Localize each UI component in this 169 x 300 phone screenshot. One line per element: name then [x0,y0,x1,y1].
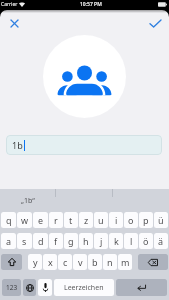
staticText: f [54,235,58,247]
staticText: e [38,214,44,226]
staticText: ö [143,235,149,247]
button[interactable]: t [64,212,78,228]
staticText: o [128,214,134,226]
button[interactable]: w [17,212,32,228]
button[interactable]: 123 [2,279,21,296]
button[interactable]: q [1,212,16,228]
staticText: k [114,235,119,247]
button[interactable]: l [124,233,138,249]
staticText: n [107,256,113,268]
staticText: c [63,256,68,268]
staticText: Leerzeichen [64,283,104,293]
staticText: b [92,256,98,268]
staticText: l [130,235,133,247]
staticText: „1b“ [21,196,35,206]
staticText: x [48,256,53,268]
staticText: m [121,256,130,268]
button[interactable]: u [94,212,108,228]
button[interactable]: x [43,254,57,270]
button[interactable]: y [28,254,42,270]
button[interactable]: f [49,233,63,249]
button[interactable]: p [139,212,153,228]
button[interactable]: r [49,212,63,228]
button[interactable]: ä [154,233,168,249]
staticText: g [68,235,74,247]
staticText: Carrier [1,1,18,8]
staticText: d [38,235,44,247]
staticText: v [78,256,83,268]
button[interactable]: o [124,212,138,228]
staticText: y [33,256,38,268]
button[interactable]: b [88,254,102,270]
staticText: s [22,235,27,247]
button[interactable]: n [103,254,117,270]
staticText: h [83,235,89,247]
button[interactable]: Dictate [38,279,52,296]
button[interactable]: „1b“ [0,189,55,212]
staticText: u [98,214,104,226]
button[interactable]: v [73,254,87,270]
button[interactable]: s [17,233,32,249]
button[interactable]: ö [139,233,153,249]
button[interactable]: h [79,233,93,249]
button[interactable]: g [64,233,78,249]
button[interactable]: i [109,212,123,228]
staticText: 123 [6,283,18,292]
button[interactable]: 1b [6,135,162,155]
staticText: a [6,235,12,247]
staticText: z [84,214,89,226]
staticText: 10:57 PM [80,1,102,8]
button[interactable]: j [94,233,108,249]
button[interactable]: e [33,212,48,228]
button[interactable]: Backspace [138,254,168,270]
button[interactable]: c [58,254,72,270]
button[interactable]: k [109,233,123,249]
staticText: q [6,214,12,226]
staticText: 1b [12,139,23,151]
button[interactable]: m [118,254,132,270]
button[interactable]: d [33,233,48,249]
staticText: i [115,214,118,226]
button[interactable]: Group photo [43,35,126,118]
button[interactable]: z [79,212,93,228]
button[interactable]: Return [116,279,167,296]
button[interactable]: Cancel [5,14,23,32]
staticText: ä [158,235,164,247]
button[interactable]: ü [154,212,168,228]
button[interactable]: Leerzeichen [54,279,114,296]
button[interactable]: a [1,233,16,249]
button[interactable]: Shift [1,254,22,270]
staticText: w [21,214,29,226]
staticText: ü [158,214,164,226]
button[interactable]: Next keyboard [23,279,36,296]
staticText: t [69,214,73,226]
staticText: r [54,214,58,226]
staticText: p [143,214,149,226]
staticText: j [100,235,103,247]
button[interactable]: Done [146,14,164,32]
